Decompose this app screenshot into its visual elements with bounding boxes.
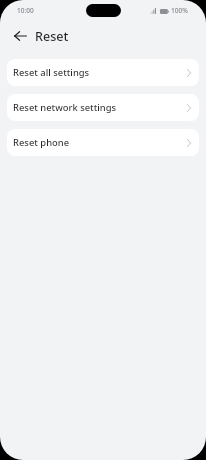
- staticText: Reset all settings: [13, 66, 90, 79]
- staticText: Reset: [35, 28, 69, 45]
- staticText: Reset phone: [13, 136, 70, 149]
- staticText: 10:00: [17, 6, 34, 15]
- staticText: 100%: [171, 6, 188, 15]
- staticText: Reset network settings: [13, 101, 117, 114]
- button[interactable]: Reset all settings: [7, 59, 199, 86]
- button[interactable]: Reset network settings: [7, 94, 199, 121]
- button[interactable]: Back: [9, 25, 31, 47]
- button[interactable]: Reset phone: [7, 129, 199, 156]
